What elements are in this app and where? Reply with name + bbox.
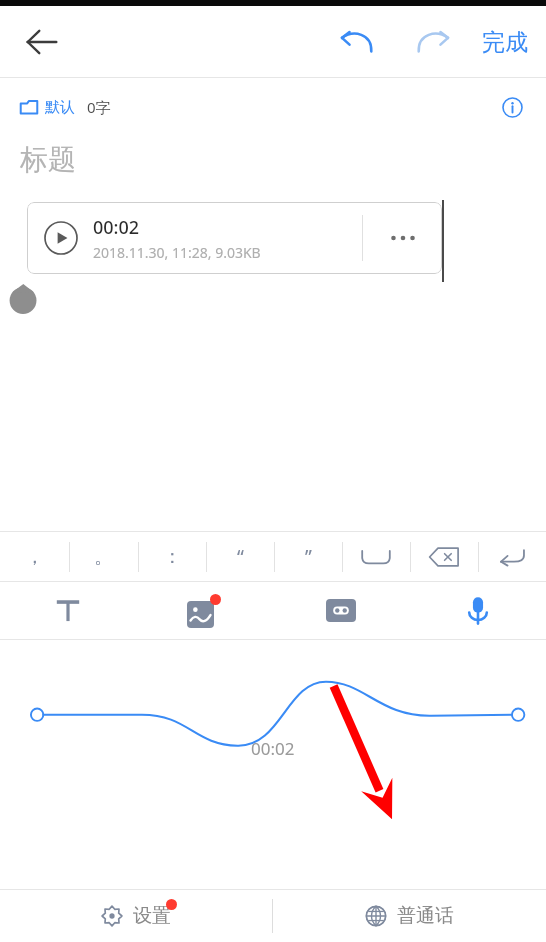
button[interactable]: Back: [14, 14, 70, 70]
button[interactable]: More options: [364, 202, 442, 274]
staticText: 00:02: [93, 215, 140, 240]
button[interactable]: 。: [69, 532, 138, 581]
staticText: 完成: [482, 28, 528, 57]
button[interactable]: ”: [274, 532, 342, 581]
staticText: “: [237, 544, 244, 570]
button[interactable]: 普通话: [273, 890, 546, 942]
button[interactable]: ：: [138, 532, 206, 581]
staticText: ”: [305, 544, 312, 570]
button[interactable]: “: [206, 532, 274, 581]
staticText: 00:02: [251, 737, 295, 760]
button[interactable]: Space: [342, 532, 410, 581]
button[interactable]: Text format: [0, 582, 136, 639]
button[interactable]: 设置: [0, 890, 272, 942]
staticText: 普通话: [397, 904, 454, 928]
button[interactable]: Insert image: [136, 582, 272, 639]
staticText: 0字: [87, 97, 111, 117]
staticText: 标题: [20, 142, 76, 177]
button[interactable]: Return: [478, 532, 546, 581]
button[interactable]: Info: [492, 87, 532, 127]
staticText: ，: [25, 545, 44, 569]
staticText: 。: [94, 545, 113, 569]
button[interactable]: Backspace: [410, 532, 478, 581]
button[interactable]: 默认: [20, 97, 111, 117]
staticText: 设置: [133, 904, 171, 928]
button[interactable]: Recordings: [272, 582, 409, 639]
button[interactable]: Undo: [330, 15, 384, 69]
button[interactable]: Voice input: [409, 582, 546, 639]
button[interactable]: Redo: [406, 15, 460, 69]
button[interactable]: 完成: [474, 20, 536, 65]
button[interactable]: ，: [0, 532, 69, 581]
staticText: 默认: [45, 98, 75, 117]
staticText: 2018.11.30, 11:28, 9.03KB: [93, 243, 261, 262]
staticText: ：: [163, 545, 182, 569]
button[interactable]: 00:02: [27, 202, 442, 274]
